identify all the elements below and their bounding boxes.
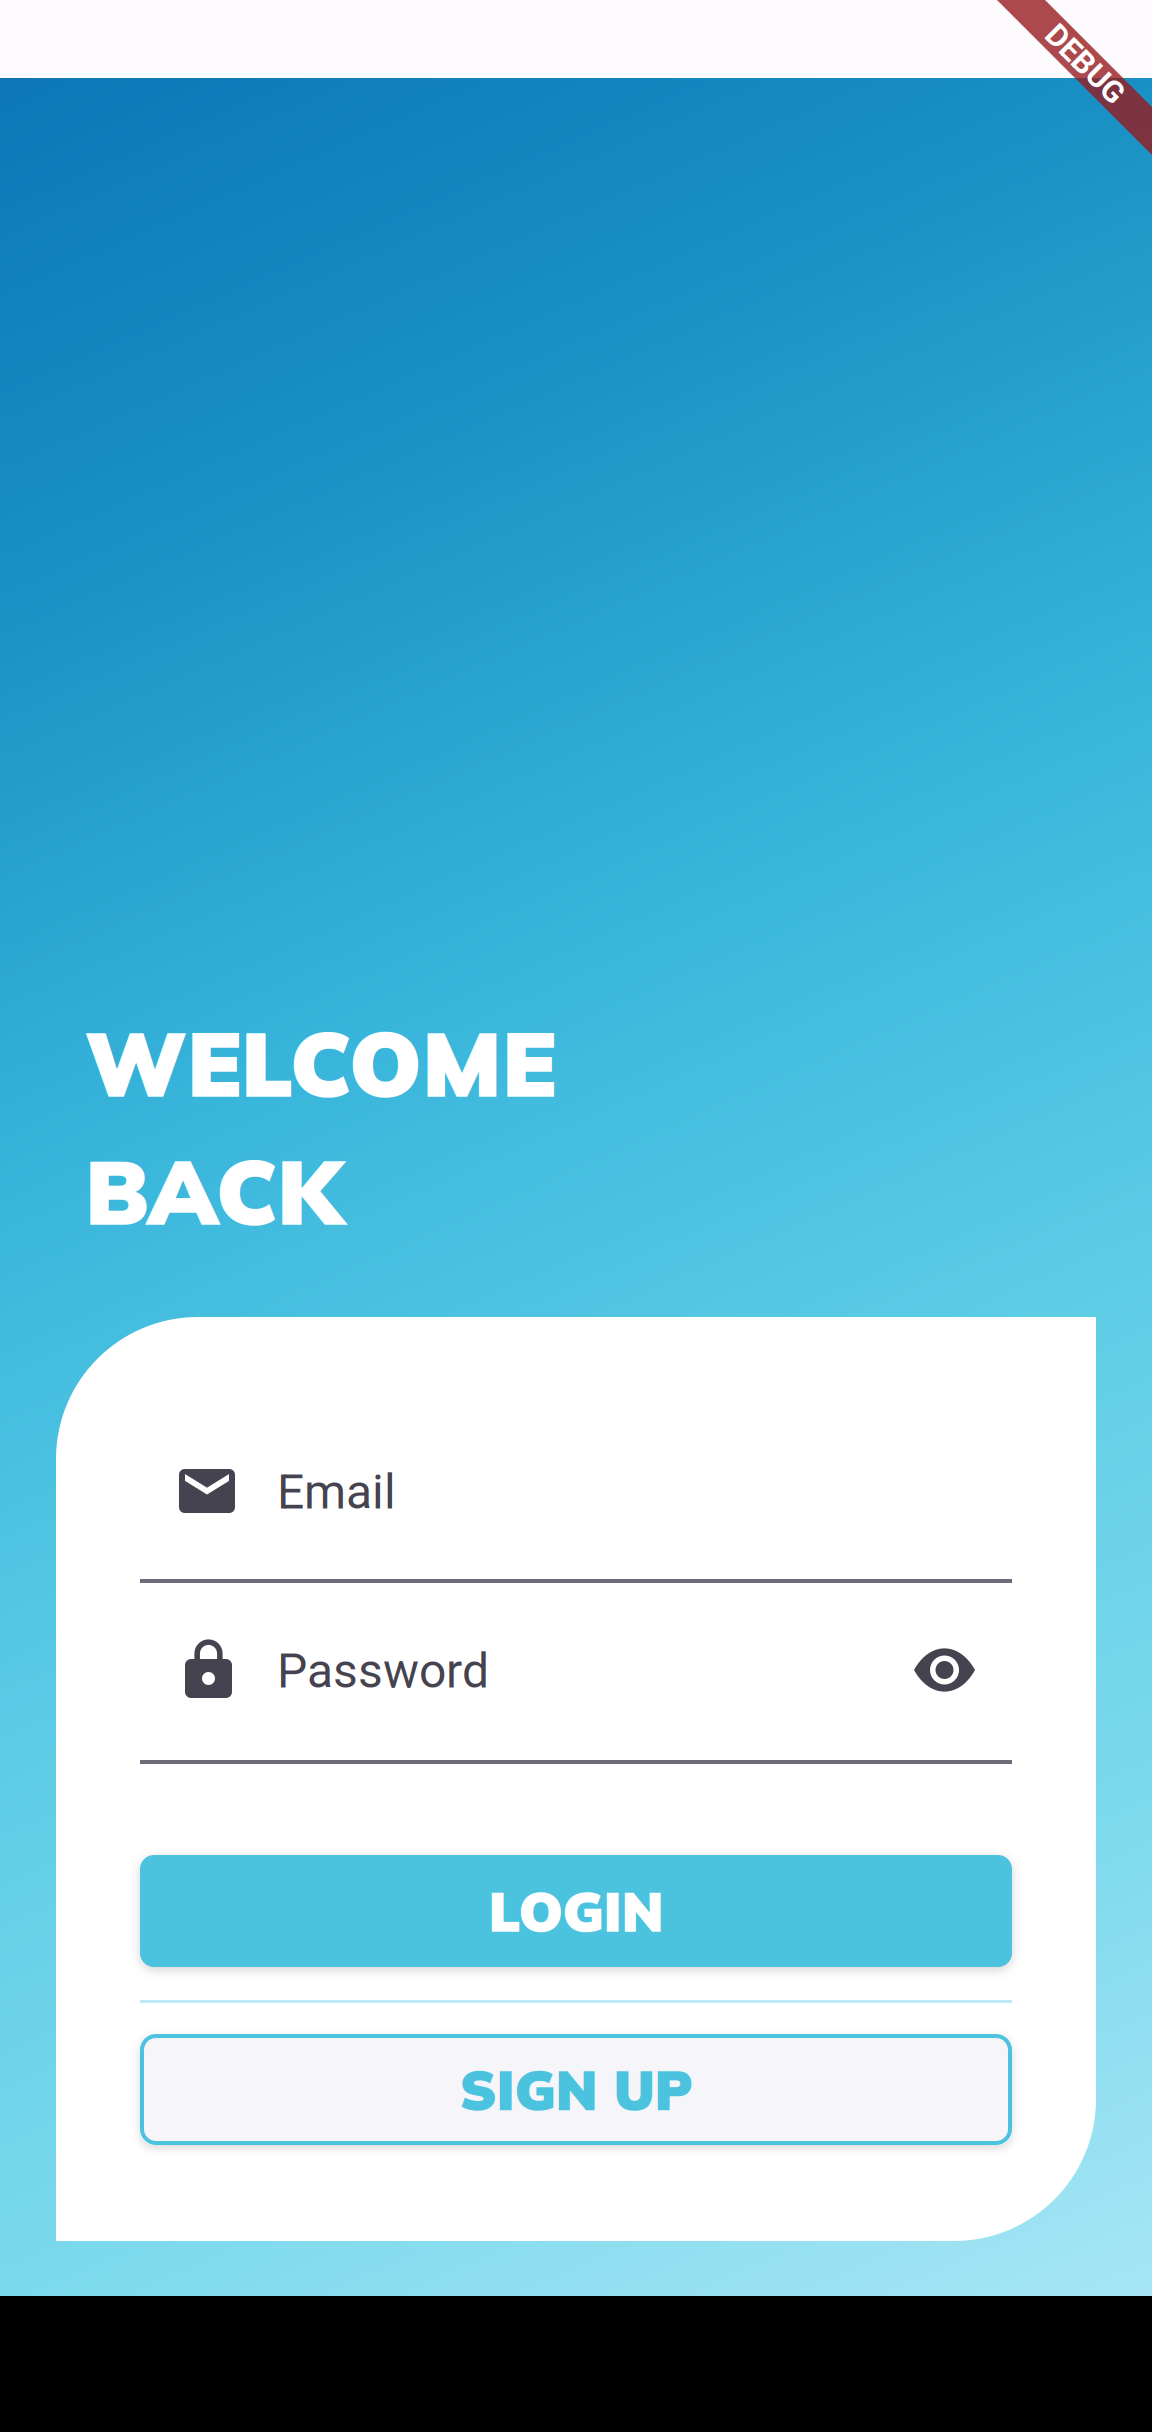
button[interactable]: LOGIN <box>140 1855 1012 1967</box>
staticText: BACK <box>85 1135 342 1247</box>
staticText: LOGIN <box>488 1877 663 1945</box>
button[interactable]: SIGN UP <box>140 2034 1012 2145</box>
staticText: SIGN UP <box>459 2055 692 2124</box>
button[interactable]: Show password <box>914 1648 975 1692</box>
staticText: WELCOME <box>85 1007 556 1119</box>
staticText: DEBUG <box>1036 46 1134 82</box>
staticText: Email <box>277 1464 396 1520</box>
staticText: Password <box>277 1643 489 1699</box>
